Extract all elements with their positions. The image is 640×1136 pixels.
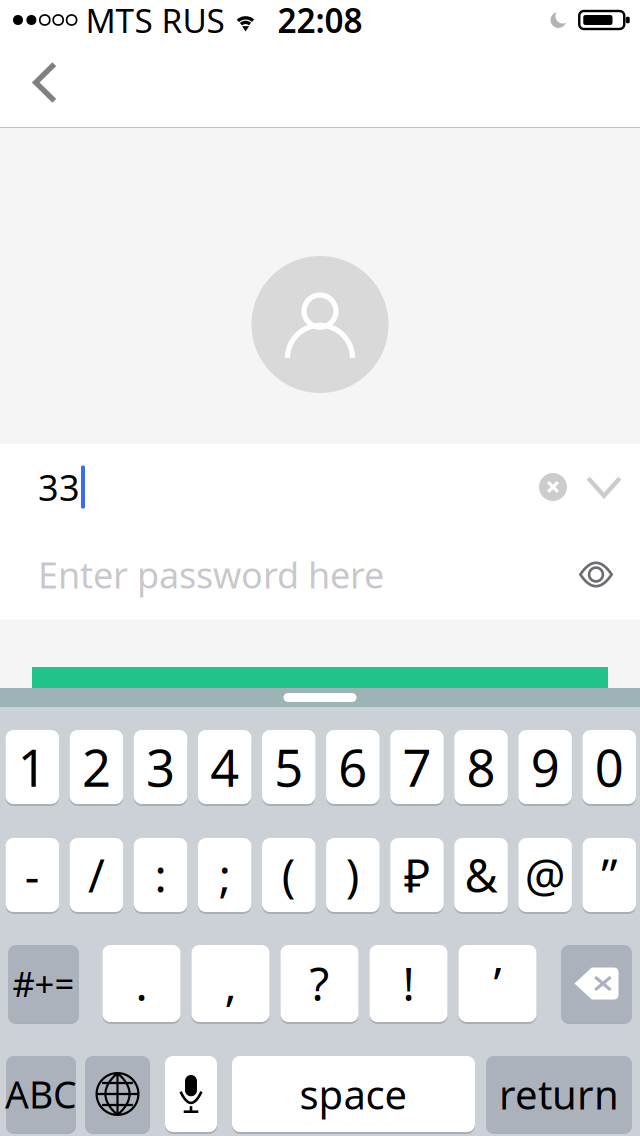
button[interactable]: Next keyboard	[85, 1055, 150, 1133]
button[interactable]: !	[369, 944, 447, 1023]
staticText: 5	[274, 733, 303, 801]
button[interactable]: :	[134, 837, 187, 913]
button[interactable]: 1	[6, 729, 59, 805]
button[interactable]: &	[454, 837, 508, 913]
button[interactable]: 9	[518, 729, 572, 805]
staticText: ;	[219, 845, 231, 905]
staticText: -	[25, 845, 40, 905]
button[interactable]: .	[102, 944, 180, 1023]
staticText: &	[465, 845, 498, 905]
staticText: ?	[309, 953, 329, 1014]
button[interactable]: Delete	[561, 944, 632, 1023]
staticText: MTS RUS	[86, 0, 225, 42]
button[interactable]: Dictation	[165, 1055, 217, 1133]
button[interactable]: #+=	[8, 944, 79, 1023]
button[interactable]: return	[486, 1055, 632, 1133]
button[interactable]: 8	[454, 729, 508, 805]
staticText: 9	[531, 733, 560, 801]
button[interactable]: ?	[280, 944, 358, 1023]
button[interactable]: ”	[582, 837, 636, 913]
staticText: !	[402, 953, 414, 1014]
button[interactable]: space	[232, 1055, 475, 1133]
button[interactable]: 5	[262, 729, 315, 805]
staticText: 6	[338, 733, 367, 801]
button[interactable]: 7	[390, 729, 444, 805]
staticText: .	[135, 953, 147, 1014]
staticText: 33	[38, 463, 80, 511]
staticText: @	[525, 845, 566, 905]
staticText: 2	[82, 733, 111, 801]
staticText: (	[282, 845, 296, 905]
button[interactable]: Show suggestions	[578, 452, 630, 522]
staticText: 0	[595, 733, 624, 801]
staticText: space	[299, 1067, 407, 1120]
staticText: )	[346, 845, 360, 905]
button[interactable]: ₽	[390, 837, 444, 913]
button[interactable]: /	[70, 837, 123, 913]
staticText: ,	[224, 953, 236, 1014]
staticText: :	[154, 845, 166, 905]
staticText: 7	[402, 733, 431, 801]
staticText: 4	[210, 733, 239, 801]
staticText: 1	[18, 733, 47, 801]
staticText: 22:08	[277, 0, 362, 42]
button[interactable]: 4	[198, 729, 251, 805]
button[interactable]: (	[262, 837, 315, 913]
button[interactable]: @	[518, 837, 572, 913]
button[interactable]: -	[6, 837, 59, 913]
button[interactable]: ’	[458, 944, 536, 1023]
staticText: Enter password here	[38, 551, 384, 598]
staticText: #+=	[12, 960, 74, 1006]
button[interactable]: ABC	[6, 1055, 76, 1133]
staticText: /	[88, 845, 105, 905]
button[interactable]: ,	[191, 944, 269, 1023]
button[interactable]: Clear text	[528, 452, 578, 522]
staticText: 3	[146, 733, 175, 801]
staticText: ABC	[5, 1069, 77, 1119]
staticText: ”	[601, 845, 617, 905]
staticText: ₽	[404, 845, 430, 905]
button[interactable]: 2	[70, 729, 123, 805]
button[interactable]: 0	[582, 729, 636, 805]
button[interactable]: Show password	[565, 538, 627, 610]
staticText: ’	[493, 953, 501, 1014]
staticText: return	[499, 1067, 619, 1120]
button[interactable]: 6	[326, 729, 380, 805]
button[interactable]: Back	[0, 41, 86, 128]
button[interactable]: 3	[134, 729, 187, 805]
button[interactable]: ;	[198, 837, 251, 913]
button[interactable]: )	[326, 837, 380, 913]
staticText: 8	[467, 733, 496, 801]
